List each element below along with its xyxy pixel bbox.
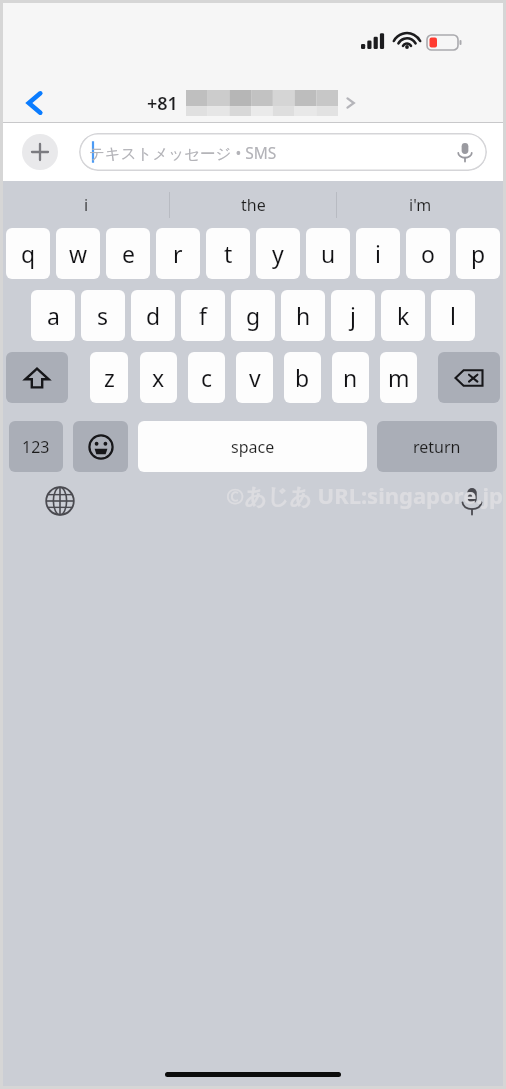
staticText: o <box>421 238 435 269</box>
staticText: k <box>397 300 410 331</box>
button[interactable]: k <box>381 290 425 341</box>
button[interactable]: l <box>431 290 475 341</box>
button[interactable]: z <box>90 352 128 403</box>
button[interactable]: t <box>206 228 250 279</box>
staticText: w <box>69 238 88 269</box>
staticText: r <box>173 238 183 269</box>
button[interactable]: w <box>56 228 100 279</box>
staticText: i <box>375 238 381 269</box>
button[interactable]: n <box>332 352 369 403</box>
staticText: g <box>246 300 261 331</box>
button[interactable]: space <box>138 421 367 472</box>
button[interactable]: Dictate <box>453 140 477 164</box>
button[interactable]: m <box>380 352 417 403</box>
button[interactable]: x <box>140 352 177 403</box>
button[interactable]: q <box>6 228 50 279</box>
button[interactable]: Shift <box>6 352 68 403</box>
button[interactable]: Add attachment <box>22 134 58 170</box>
button[interactable]: o <box>406 228 450 279</box>
button[interactable]: f <box>181 290 225 341</box>
staticText: f <box>199 300 207 331</box>
staticText: space <box>231 436 275 458</box>
staticText: y <box>272 238 284 269</box>
button[interactable]: Emoji <box>73 421 128 472</box>
staticText: n <box>343 362 358 393</box>
button[interactable]: i <box>3 181 169 228</box>
staticText: c <box>201 362 213 393</box>
staticText: h <box>296 300 311 331</box>
staticText: s <box>97 300 109 331</box>
button[interactable]: j <box>331 290 375 341</box>
button[interactable]: s <box>81 290 125 341</box>
staticText: 123 <box>22 436 50 458</box>
button[interactable]: 123 <box>9 421 63 472</box>
staticText: i <box>84 194 89 216</box>
button[interactable]: u <box>306 228 350 279</box>
button[interactable]: v <box>236 352 273 403</box>
staticText: d <box>146 300 161 331</box>
button[interactable]: Back <box>13 81 57 125</box>
button[interactable]: the <box>170 181 336 228</box>
button[interactable]: テキストメッセージ • SMS <box>79 133 487 171</box>
button[interactable]: return <box>377 421 497 472</box>
staticText: i'm <box>409 194 432 216</box>
staticText: m <box>388 362 410 393</box>
staticText: z <box>104 362 115 393</box>
button[interactable]: +81 <box>147 87 358 119</box>
staticText: q <box>21 238 36 269</box>
button[interactable]: i <box>356 228 400 279</box>
staticText: the <box>241 194 266 216</box>
staticText: a <box>47 300 60 331</box>
button[interactable]: b <box>284 352 321 403</box>
button[interactable]: e <box>106 228 150 279</box>
button[interactable]: Dictation <box>455 484 489 518</box>
staticText: v <box>249 362 261 393</box>
button[interactable]: g <box>231 290 275 341</box>
button[interactable]: p <box>456 228 500 279</box>
button[interactable]: a <box>31 290 75 341</box>
staticText: テキストメッセージ • SMS <box>89 142 277 163</box>
staticText: u <box>321 238 336 269</box>
button[interactable]: d <box>131 290 175 341</box>
staticText: p <box>471 238 486 269</box>
button[interactable]: i'm <box>337 181 503 228</box>
button[interactable]: r <box>156 228 200 279</box>
button[interactable]: Backspace <box>438 352 500 403</box>
staticText: t <box>224 238 233 269</box>
staticText: return <box>413 436 461 458</box>
staticText: e <box>122 238 135 269</box>
staticText: x <box>152 362 165 393</box>
staticText: +81 <box>147 91 178 116</box>
button[interactable]: y <box>256 228 300 279</box>
staticText: ©あじあ URL:singapore.jp <box>226 480 503 510</box>
button[interactable]: c <box>188 352 225 403</box>
staticText: l <box>450 300 456 331</box>
button[interactable]: Switch keyboard <box>41 482 79 520</box>
staticText: b <box>295 362 310 393</box>
staticText: j <box>350 300 356 331</box>
button[interactable]: h <box>281 290 325 341</box>
